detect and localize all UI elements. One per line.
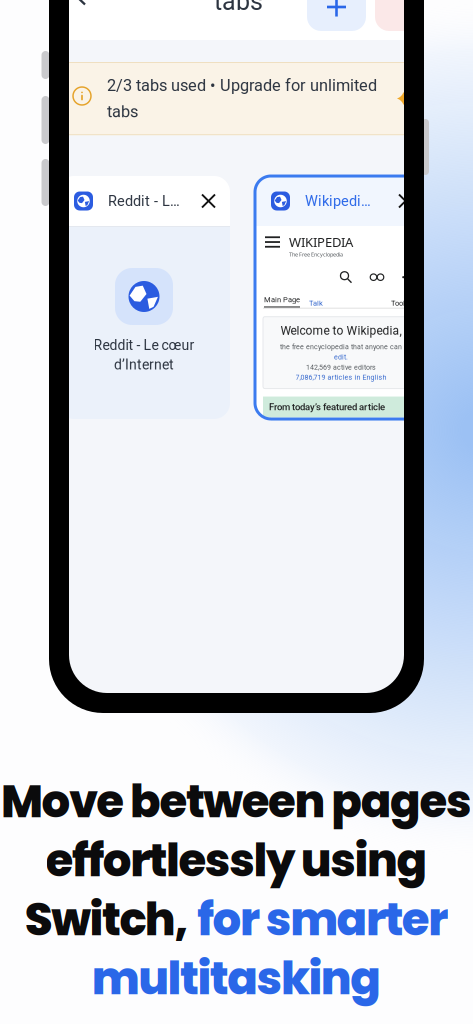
- staticText: tabs: [214, 0, 263, 16]
- staticText: for smarter: [197, 888, 448, 951]
- staticText: d’Internet: [114, 356, 174, 373]
- staticText: Reddit - Le cœur: [93, 337, 194, 353]
- button[interactable]: Wikipedia tab: [255, 176, 427, 419]
- staticText: multitasking: [92, 947, 381, 1010]
- staticText: effortlessly using: [46, 829, 427, 892]
- staticText: Talk: [309, 299, 323, 308]
- staticText: Wikipedi…: [305, 192, 371, 209]
- staticText: Welcome to Wikipedia,: [280, 324, 401, 338]
- staticText: 7,086,719 articles in English: [295, 373, 386, 382]
- staticText: The Free Encyclopedia: [289, 251, 343, 258]
- staticText: 2/3 tabs used • Upgrade for unlimited ta…: [107, 76, 377, 121]
- staticText: Tools: [391, 299, 409, 308]
- button[interactable]: Reddit tab: [58, 176, 230, 419]
- staticText: 142,569 active editors: [306, 363, 376, 371]
- staticText: From today’s featured article: [269, 402, 385, 413]
- staticText: Main Page: [264, 295, 300, 304]
- staticText: Reddit - L…: [108, 192, 180, 209]
- button[interactable]: Back: [65, 0, 95, 12]
- button[interactable]: Close all tabs: [375, 0, 434, 31]
- staticText: edit.: [334, 353, 348, 361]
- staticText: Switch,: [25, 888, 188, 951]
- button[interactable]: New tab: [307, 0, 366, 31]
- staticText: WIKIPEDIA: [289, 233, 353, 251]
- staticText: Move between pages: [1, 770, 472, 833]
- staticText: the free encyclopedia that anyone can: [280, 343, 402, 351]
